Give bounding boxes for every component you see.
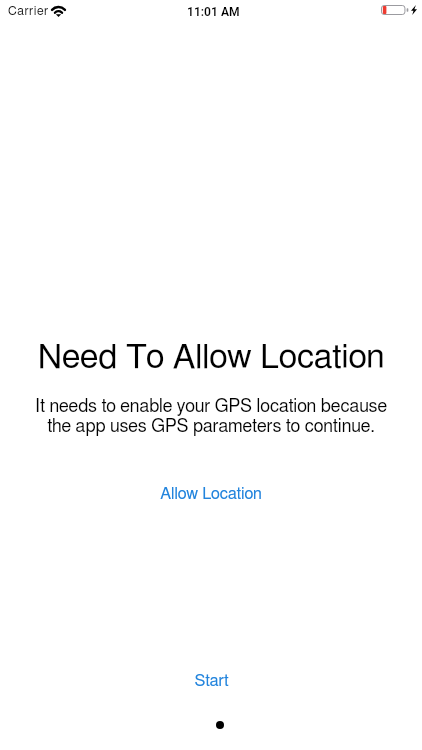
staticText: Carrier bbox=[8, 5, 49, 17]
other: Page 1 of 1 bbox=[216, 721, 224, 729]
other: Battery low bbox=[381, 5, 408, 15]
other: Wi-Fi signal bbox=[51, 6, 66, 17]
staticText: 11:01 AM bbox=[187, 5, 240, 19]
staticText: Start bbox=[194, 673, 229, 689]
staticText: It needs to enable your GPS location bec… bbox=[0, 398, 422, 436]
staticText: Allow Location bbox=[160, 486, 262, 502]
button[interactable]: Allow Location bbox=[146, 481, 276, 507]
other: Charging bbox=[411, 5, 417, 15]
staticText: Need To Allow Location bbox=[0, 341, 422, 375]
button[interactable]: Start bbox=[176, 668, 247, 694]
